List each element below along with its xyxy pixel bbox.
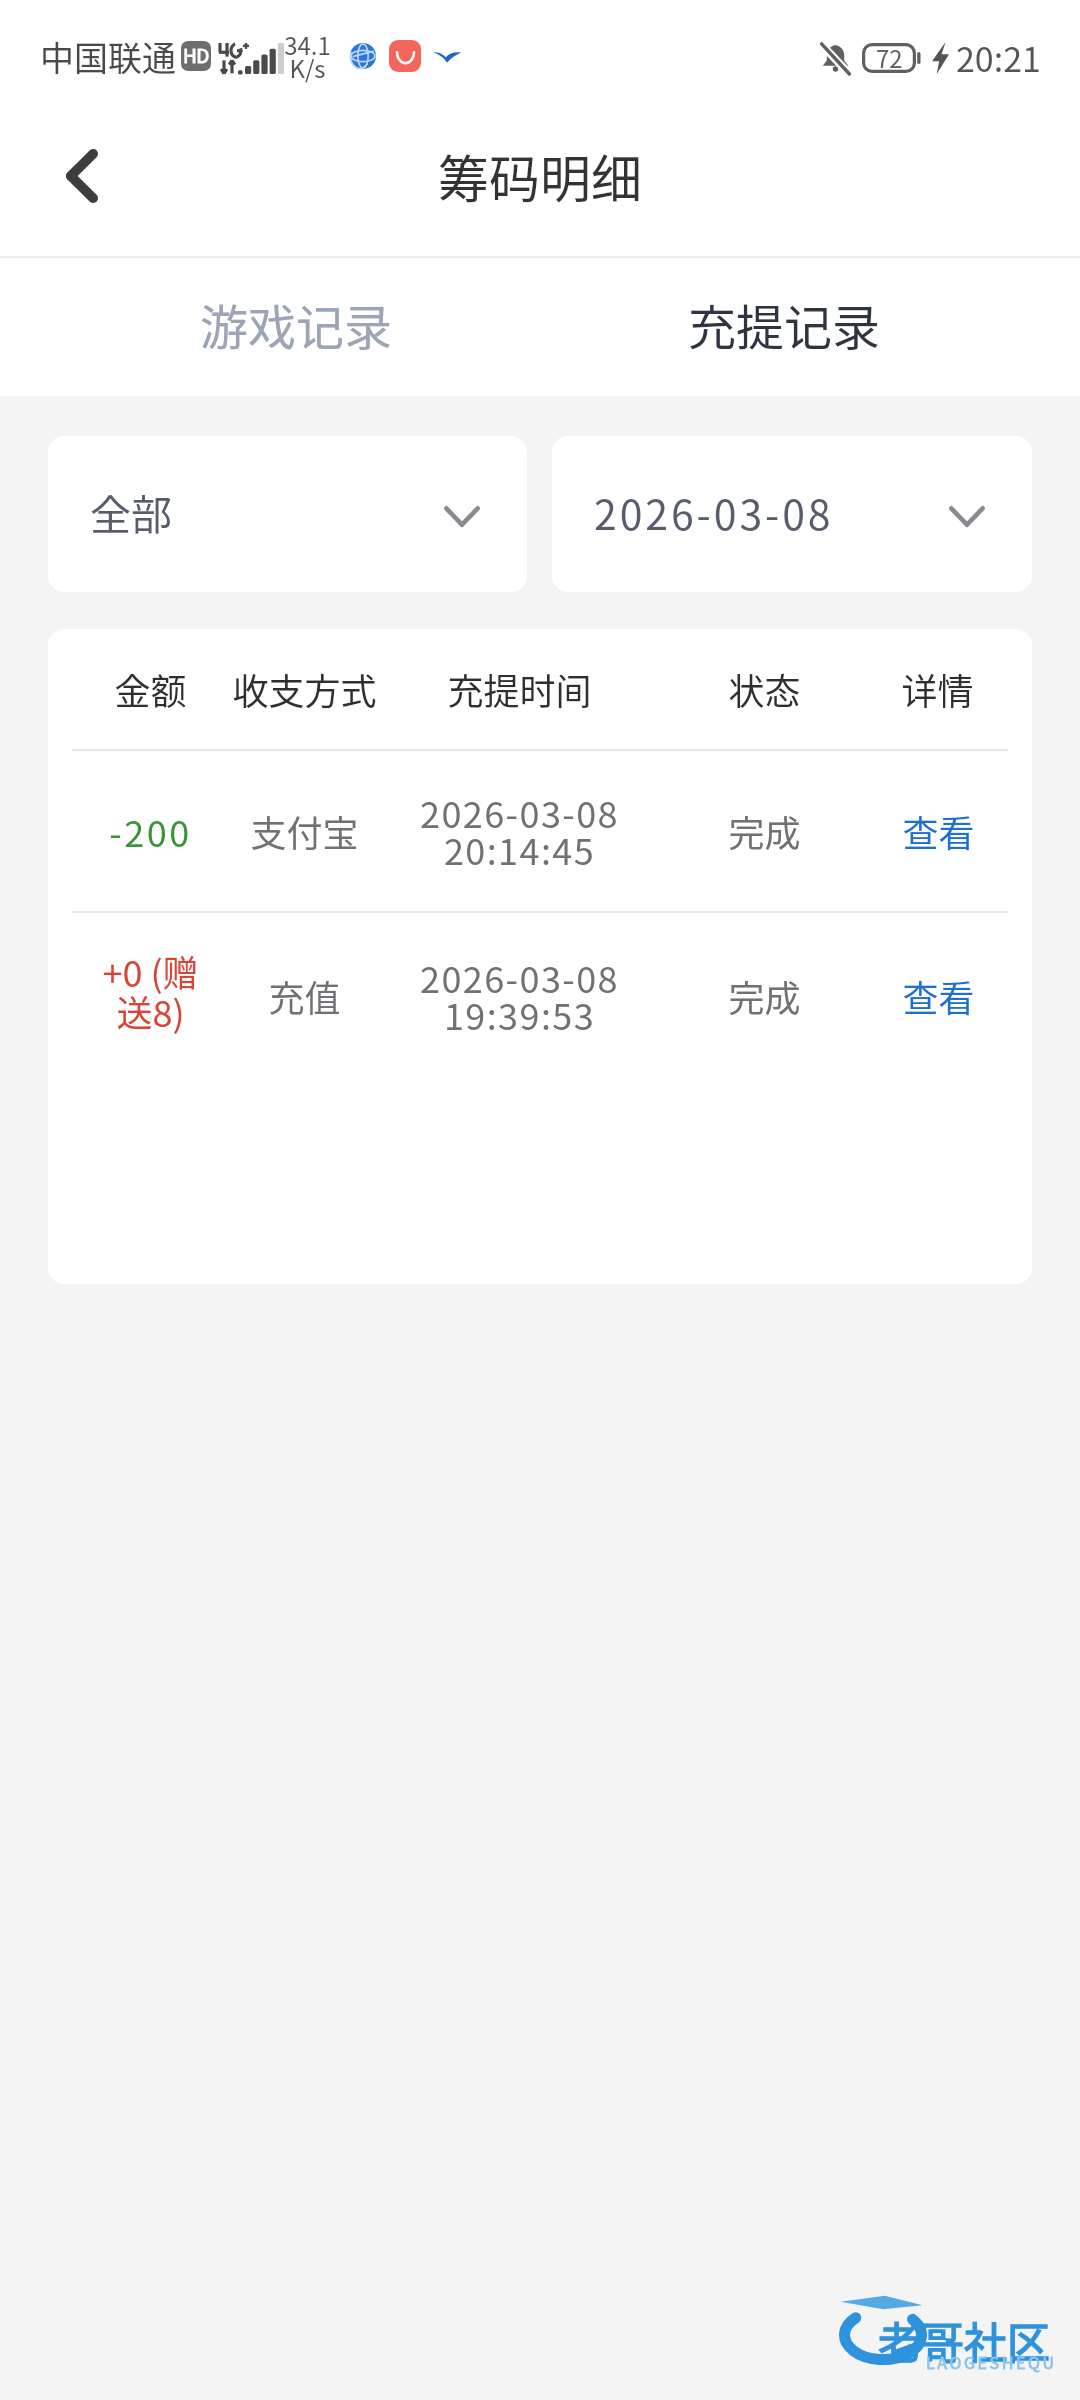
staticText: LAOGESHEQU	[926, 2350, 1057, 2373]
staticText: 筹码明细	[438, 139, 643, 213]
staticText: HD	[183, 41, 209, 69]
staticText: 完成	[728, 970, 801, 1022]
staticText: 充值	[268, 970, 341, 1022]
staticText: 游戏记录	[200, 289, 393, 359]
button[interactable]: 全部	[48, 436, 527, 592]
staticText: 充提记录	[688, 289, 881, 359]
staticText: 20:21	[956, 33, 1041, 82]
staticText: 支付宝	[250, 805, 359, 857]
staticText: 收支方式	[232, 663, 377, 715]
staticText: 2026-03-08 20:14:45	[420, 786, 619, 876]
button[interactable]: 查看	[872, 946, 1004, 1046]
staticText: 72	[876, 40, 903, 75]
staticText: 查看	[902, 805, 975, 857]
staticText: 状态	[728, 663, 801, 715]
button[interactable]: 2026-03-08	[552, 436, 1032, 592]
staticText: +0 (赠 送8)	[102, 945, 199, 1037]
staticText: 充提时间	[447, 663, 592, 715]
staticText: K/s	[289, 50, 326, 85]
staticText: 完成	[728, 805, 801, 857]
staticText: 全部	[90, 482, 172, 541]
staticText: 老哥社区	[878, 2309, 1050, 2371]
staticText: 2026-03-08	[594, 482, 834, 541]
staticText: 查看	[902, 970, 975, 1022]
button[interactable]: 充提记录	[540, 258, 1028, 396]
staticText: 金额	[114, 663, 187, 715]
staticText: 详情	[901, 663, 974, 715]
staticText: 2026-03-08 19:39:53	[420, 951, 619, 1041]
staticText: -200	[109, 805, 192, 857]
button[interactable]: Back	[22, 116, 142, 236]
button[interactable]: 游戏记录	[52, 258, 540, 396]
button[interactable]: 查看	[872, 781, 1004, 881]
staticText: 34.1	[284, 27, 331, 62]
staticText: 中国联通	[40, 32, 176, 81]
